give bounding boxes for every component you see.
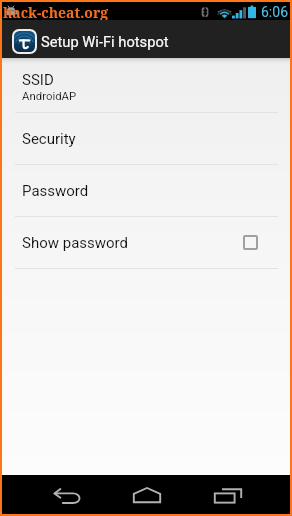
staticText: Password [22, 182, 89, 200]
button[interactable]: Show password [2, 217, 290, 268]
staticText: SSID [22, 71, 54, 89]
staticText: Show password [22, 234, 129, 252]
button[interactable]: Home [118, 476, 176, 515]
button[interactable]: Back [38, 476, 96, 515]
button[interactable]: Recent apps [199, 476, 257, 515]
staticText: Setup Wi-Fi hotspot [41, 33, 169, 50]
button[interactable]: Security [2, 113, 290, 164]
staticText: Security [22, 130, 76, 148]
staticText: AndroidAP [22, 89, 77, 102]
button[interactable]: SSID [2, 58, 290, 112]
staticText: hack-cheat.org [3, 3, 109, 21]
staticText: 6:06 [261, 4, 288, 20]
button[interactable]: Password [2, 165, 290, 216]
